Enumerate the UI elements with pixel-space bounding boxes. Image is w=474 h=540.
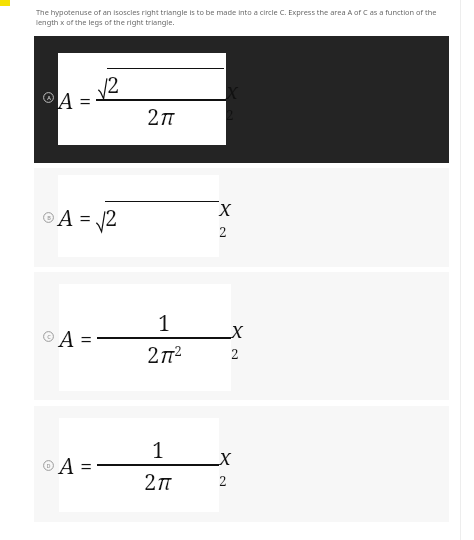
staticText: A bbox=[59, 450, 75, 480]
staticText: = bbox=[79, 85, 92, 115]
staticText: A bbox=[47, 94, 51, 101]
staticText: A bbox=[59, 323, 75, 353]
staticText: B bbox=[47, 214, 51, 221]
staticText: π2 bbox=[160, 339, 182, 369]
staticText: = bbox=[80, 450, 93, 480]
staticText: D bbox=[46, 462, 51, 469]
staticText: 2 bbox=[107, 69, 120, 99]
staticText: A bbox=[58, 85, 74, 115]
staticText: 2 bbox=[147, 339, 160, 369]
button[interactable]: B bbox=[34, 168, 449, 267]
staticText: π bbox=[157, 466, 172, 496]
button[interactable]: D bbox=[34, 406, 449, 522]
staticText: 1 bbox=[158, 307, 171, 337]
staticText: π bbox=[160, 101, 175, 131]
button[interactable]: A bbox=[34, 36, 449, 163]
button[interactable]: C bbox=[34, 272, 449, 400]
staticText: = bbox=[79, 202, 92, 232]
staticText: 2 bbox=[147, 101, 160, 131]
staticText: A bbox=[58, 202, 74, 232]
staticText: 2 bbox=[144, 466, 157, 496]
staticText: 1 bbox=[152, 434, 165, 464]
staticText: 2 bbox=[105, 202, 118, 232]
staticText: C bbox=[47, 333, 51, 340]
staticText: = bbox=[80, 323, 93, 353]
staticText: The hypotenuse of an isoscles right tria… bbox=[36, 7, 444, 27]
